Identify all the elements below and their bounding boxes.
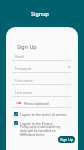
button[interactable]: Photo (optional) bbox=[16, 100, 49, 105]
staticText: Signup bbox=[31, 10, 49, 17]
staticText: Sign Up bbox=[60, 137, 74, 142]
staticText: I agree to the Privacy Policy and unders… bbox=[20, 121, 62, 137]
staticText: I agree to the terms of service bbox=[20, 112, 67, 116]
staticText: Password bbox=[15, 66, 32, 71]
button[interactable]: Sign Up bbox=[58, 136, 75, 143]
staticText: more bbox=[21, 133, 27, 136]
button[interactable]: more bbox=[19, 133, 28, 136]
staticText: Photo (optional) bbox=[24, 101, 49, 105]
staticText: Email bbox=[15, 54, 25, 59]
button[interactable]: I agree to the terms of service bbox=[14, 112, 72, 116]
staticText: Sign Up bbox=[17, 43, 37, 50]
staticText: First name bbox=[15, 78, 33, 83]
staticText: Last name bbox=[15, 90, 33, 95]
button[interactable]: Show password bbox=[67, 65, 71, 69]
button[interactable]: I agree to the Privacy Policy and unders… bbox=[14, 121, 62, 137]
